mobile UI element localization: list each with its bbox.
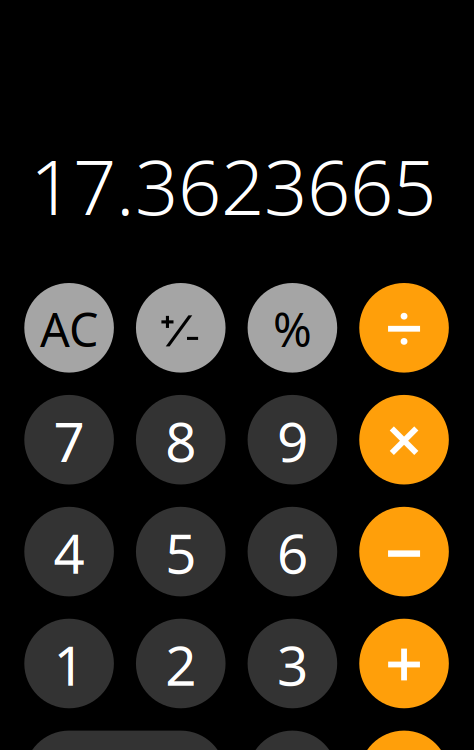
staticText: 3	[277, 628, 308, 701]
button[interactable]: 5	[136, 507, 226, 596]
staticText: 17.3623665	[30, 135, 436, 236]
button[interactable]: Multiply	[359, 395, 449, 484]
button[interactable]: 4	[24, 507, 114, 596]
button[interactable]: 8	[136, 395, 226, 484]
button[interactable]: 7	[24, 395, 114, 484]
staticText: 5	[165, 516, 196, 589]
button[interactable]: %	[248, 283, 337, 373]
staticText: 8	[165, 404, 196, 477]
staticText: 2	[165, 628, 196, 701]
button[interactable]: 6	[248, 507, 337, 596]
staticText: 6	[277, 516, 308, 589]
button[interactable]: Toggle sign	[136, 283, 226, 373]
button[interactable]: AC	[24, 283, 114, 373]
button[interactable]: 2	[136, 619, 226, 708]
button[interactable]: Divide	[359, 283, 449, 373]
button[interactable]: Equals	[359, 731, 449, 750]
staticText: 1	[54, 628, 85, 701]
button[interactable]: 3	[248, 619, 337, 708]
staticText: 4	[54, 516, 85, 589]
button[interactable]: 1	[24, 619, 114, 708]
staticText: %	[273, 298, 312, 360]
staticText: 7	[54, 404, 85, 477]
button[interactable]: 9	[248, 395, 337, 484]
button[interactable]: 0	[24, 731, 225, 750]
staticText: 9	[277, 404, 308, 477]
staticText: AC	[40, 298, 98, 360]
button[interactable]: Add	[359, 619, 449, 708]
button[interactable]: .	[248, 731, 337, 750]
button[interactable]: Subtract	[359, 507, 449, 596]
